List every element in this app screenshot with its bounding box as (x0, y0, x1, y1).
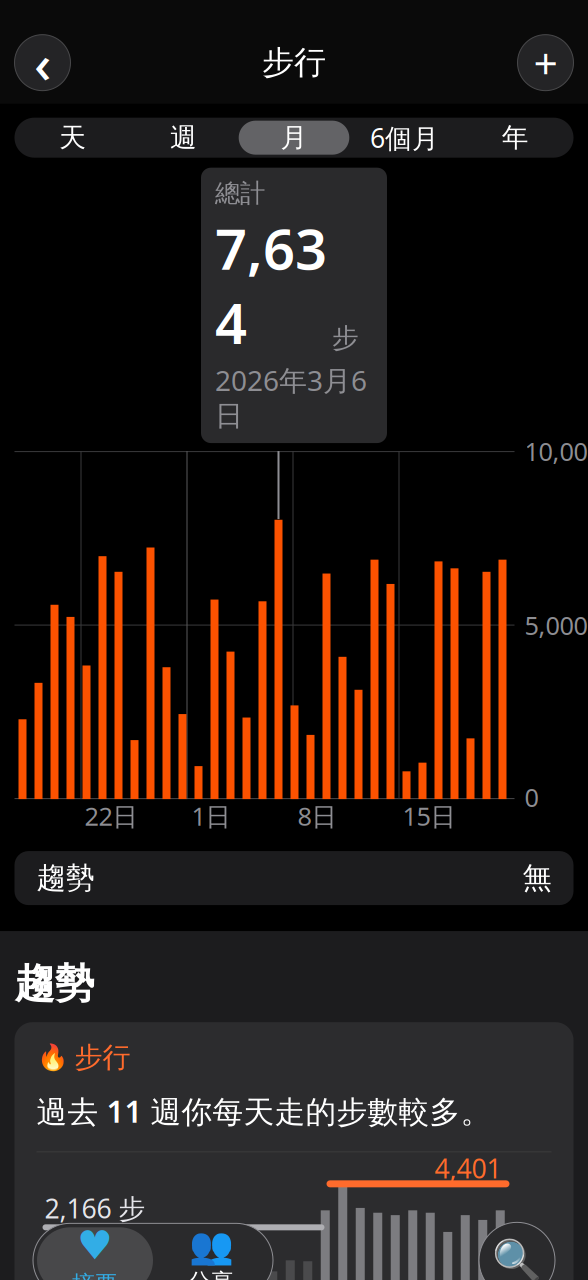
button[interactable]: 年 (460, 121, 570, 155)
staticText: 過去 11 週你每天走的步數較多。 (36, 1091, 491, 1131)
button[interactable]: 搜尋 (479, 1222, 555, 1280)
staticText: 10,000 (524, 434, 588, 468)
staticText: 趨勢 (36, 860, 94, 896)
button[interactable]: 週 (128, 121, 239, 155)
button[interactable]: 趨勢 (14, 851, 573, 905)
staticText: 1日 (191, 799, 230, 833)
staticText: 步行 (74, 1040, 130, 1075)
button[interactable]: 返回 (14, 35, 70, 91)
staticText: 分享 (188, 1268, 234, 1280)
staticText: 👥 (188, 1225, 233, 1266)
staticText: ‹ (34, 27, 51, 98)
staticText: ♥ (77, 1223, 113, 1268)
staticText: 2,166 步 (44, 1190, 145, 1226)
staticText: 天 (59, 121, 86, 154)
staticText: 步行 (262, 43, 326, 82)
button[interactable]: 6個月 (349, 121, 460, 155)
staticText: 2026年3月6日 (215, 361, 367, 433)
staticText: 摘要 (72, 1270, 118, 1280)
button[interactable]: ♥ (37, 1227, 153, 1280)
staticText: 週 (170, 121, 197, 154)
staticText: 趨勢 (14, 959, 94, 1008)
staticText: 22日 (84, 799, 137, 833)
staticText: 月 (280, 121, 307, 154)
staticText: 總計 (215, 178, 265, 209)
staticText: 15日 (402, 799, 455, 833)
staticText: 4,401 (434, 1150, 501, 1186)
staticText: 5,000 (524, 608, 587, 642)
staticText: 7,634 (215, 211, 327, 359)
button[interactable]: 加入資料 (517, 35, 573, 91)
staticText: 無 (522, 860, 551, 896)
staticText: 8日 (297, 799, 336, 833)
staticText: 🔍 (492, 1237, 542, 1280)
staticText: 6個月 (370, 120, 439, 155)
staticText: + (533, 34, 557, 91)
staticText: 0 (524, 780, 538, 814)
staticText: 年 (502, 121, 529, 154)
button[interactable]: 月 (239, 121, 349, 155)
button[interactable]: 👥 (153, 1227, 269, 1280)
button[interactable]: 天 (17, 121, 128, 155)
staticText: 🔥 (36, 1043, 68, 1072)
staticText: 步 (332, 322, 359, 355)
